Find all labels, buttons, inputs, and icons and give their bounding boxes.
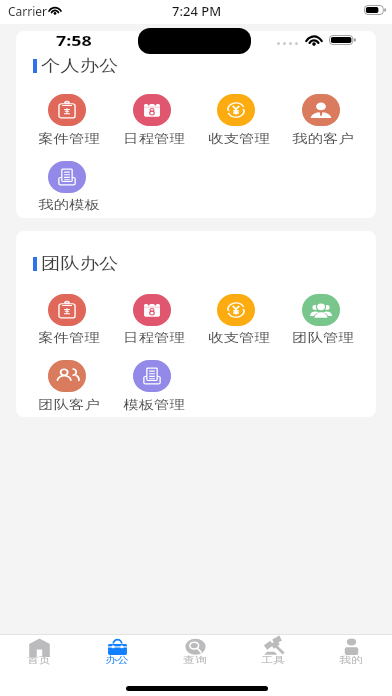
staticText: 个人办公 [41, 56, 118, 76]
staticText: 团队办公 [41, 254, 118, 274]
staticText: 办公 [105, 654, 129, 665]
staticText: 首页 [27, 654, 51, 665]
staticText: 团队客户 [38, 397, 100, 413]
button[interactable] [194, 290, 279, 348]
button[interactable] [24, 356, 109, 414]
staticText: 工具 [261, 654, 285, 665]
staticText: 收支管理 [208, 131, 270, 147]
staticText: 案件管理 [38, 330, 100, 346]
staticText: 7:58 [56, 30, 92, 50]
button[interactable] [279, 290, 364, 348]
button[interactable]: 工具 [234, 636, 312, 670]
button[interactable] [109, 290, 194, 348]
button[interactable] [24, 90, 109, 148]
button[interactable] [279, 90, 364, 148]
staticText: 查询 [183, 654, 207, 665]
staticText: 日程管理 [123, 131, 185, 147]
button[interactable]: 办公 [78, 636, 156, 670]
staticText: 7:24 PM [172, 2, 222, 20]
button[interactable] [109, 90, 194, 148]
staticText: 我的模板 [38, 197, 100, 213]
staticText: Carrier [8, 3, 48, 19]
button[interactable] [24, 157, 109, 215]
button[interactable]: 我的 [312, 636, 390, 670]
button[interactable]: 查询 [156, 636, 234, 670]
staticText: 团队管理 [292, 330, 354, 346]
staticText: 收支管理 [208, 330, 270, 346]
staticText: 模板管理 [123, 397, 185, 413]
button[interactable] [194, 90, 279, 148]
staticText: 我的客户 [292, 131, 354, 147]
button[interactable]: 首页 [0, 636, 78, 670]
button[interactable] [24, 290, 109, 348]
button[interactable] [109, 356, 194, 414]
staticText: 日程管理 [123, 330, 185, 346]
staticText: 我的 [339, 654, 363, 665]
staticText: 案件管理 [38, 131, 100, 147]
